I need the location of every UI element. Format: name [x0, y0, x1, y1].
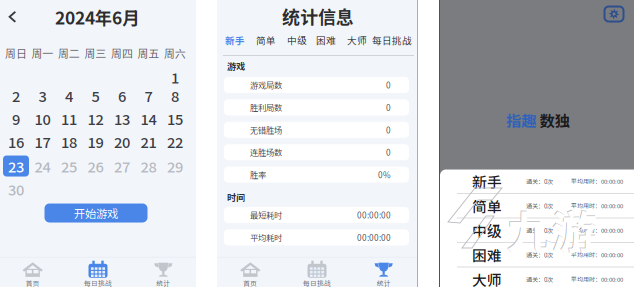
- staticText: 平均耗时: [250, 231, 282, 243]
- button[interactable]: 每日挑战: [65, 261, 131, 287]
- staticText: 00:00:00: [357, 209, 391, 221]
- button[interactable]: 每日挑战: [284, 261, 350, 287]
- staticText: 11: [61, 108, 77, 129]
- staticText: 胜利局数: [250, 101, 282, 113]
- staticText: 指趣: [506, 109, 536, 131]
- button[interactable]: Back: [1, 6, 23, 28]
- staticText: 九游: [507, 197, 597, 262]
- staticText: 通关：0次: [526, 250, 553, 259]
- staticText: 17: [34, 131, 50, 152]
- staticText: 首页: [243, 278, 257, 287]
- button[interactable]: 胜利局数: [224, 99, 409, 115]
- staticText: 23: [8, 155, 24, 177]
- button[interactable]: 首页: [217, 261, 284, 287]
- staticText: 平均用时：00:00:00: [571, 177, 623, 186]
- staticText: 29: [167, 155, 183, 177]
- staticText: 大师: [347, 33, 367, 47]
- staticText: 通关：0次: [526, 275, 553, 284]
- button[interactable]: 中级: [287, 33, 307, 47]
- staticText: 周四: [111, 45, 133, 61]
- button[interactable]: 每日挑战: [372, 33, 412, 47]
- staticText: 统计: [156, 278, 170, 287]
- staticText: 24: [34, 155, 50, 177]
- staticText: 通关：0次: [526, 177, 553, 186]
- staticText: 14: [140, 108, 156, 129]
- staticText: 2: [12, 85, 20, 106]
- staticText: 平均用时：00:00:00: [571, 226, 623, 235]
- button[interactable]: 首页: [0, 261, 65, 287]
- staticText: 周一: [31, 45, 53, 61]
- staticText: 27: [114, 155, 130, 177]
- staticText: 12: [87, 108, 103, 129]
- staticText: 2024年6月: [55, 4, 139, 30]
- staticText: 26: [87, 155, 103, 177]
- staticText: 1: [171, 66, 179, 88]
- staticText: 0%: [378, 169, 391, 181]
- staticText: 13: [114, 108, 130, 129]
- staticText: 每日挑战: [372, 33, 412, 47]
- staticText: 周二: [58, 45, 80, 61]
- staticText: 6: [118, 85, 126, 106]
- staticText: 时间: [227, 190, 245, 203]
- staticText: 16: [8, 131, 24, 152]
- staticText: 20: [114, 131, 130, 152]
- staticText: 30: [8, 178, 24, 200]
- staticText: 周三: [84, 45, 106, 61]
- staticText: 简单: [256, 33, 276, 47]
- staticText: 3: [38, 85, 46, 106]
- staticText: 0: [386, 79, 391, 91]
- staticText: 游戏: [227, 59, 245, 72]
- staticText: 每日挑战: [84, 278, 112, 287]
- staticText: 每日挑战: [303, 278, 331, 287]
- staticText: 新手: [472, 171, 502, 192]
- staticText: 通关：0次: [526, 201, 553, 210]
- button[interactable]: Settings: [604, 6, 623, 21]
- staticText: 25: [61, 155, 77, 177]
- staticText: 开始游戏: [74, 205, 118, 221]
- staticText: 9: [12, 108, 20, 129]
- staticText: 九游: [506, 196, 596, 262]
- staticText: 通关：0次: [526, 226, 553, 235]
- staticText: 无错胜场: [250, 124, 282, 136]
- staticText: 中级: [287, 33, 307, 47]
- button[interactable]: 新手: [225, 33, 245, 47]
- staticText: 统计信息: [282, 3, 354, 29]
- staticText: 5: [91, 85, 99, 106]
- staticText: 18: [61, 131, 77, 152]
- staticText: 平均用时：00:00:00: [571, 250, 623, 259]
- staticText: 28: [140, 155, 156, 177]
- staticText: 10: [34, 108, 50, 129]
- button[interactable]: 无错胜场: [224, 122, 409, 138]
- button[interactable]: 游戏局数: [224, 77, 409, 93]
- staticText: 平均用时：00:00:00: [571, 201, 623, 210]
- button[interactable]: 最短耗时: [224, 207, 409, 223]
- staticText: 4: [65, 85, 73, 106]
- staticText: 0: [386, 101, 391, 113]
- staticText: 22: [167, 131, 183, 152]
- staticText: 大师: [472, 269, 502, 287]
- staticText: 胜率: [250, 169, 266, 181]
- staticText: 连胜场数: [250, 146, 282, 158]
- staticText: 8: [171, 85, 179, 106]
- staticText: 简单: [472, 195, 502, 216]
- button[interactable]: 开始游戏: [44, 203, 147, 222]
- staticText: 周五: [137, 45, 159, 61]
- button[interactable]: 大师: [347, 33, 367, 47]
- staticText: 周六: [164, 45, 186, 61]
- button[interactable]: 胜率: [224, 167, 409, 183]
- button[interactable]: 统计: [350, 261, 417, 287]
- button[interactable]: 连胜场数: [224, 144, 409, 160]
- staticText: 数独: [540, 109, 570, 131]
- staticText: 新手: [225, 33, 245, 47]
- staticText: 游戏局数: [250, 79, 282, 91]
- staticText: 7: [144, 85, 152, 106]
- staticText: 00:00:00: [357, 231, 391, 243]
- button[interactable]: 平均耗时: [224, 229, 409, 245]
- button[interactable]: 统计: [131, 261, 196, 287]
- staticText: 中级: [472, 220, 502, 241]
- button[interactable]: 困难: [316, 33, 336, 47]
- staticText: 周日: [5, 45, 27, 61]
- staticText: 0: [386, 124, 391, 136]
- button[interactable]: 简单: [256, 33, 276, 47]
- staticText: 最短耗时: [250, 209, 282, 221]
